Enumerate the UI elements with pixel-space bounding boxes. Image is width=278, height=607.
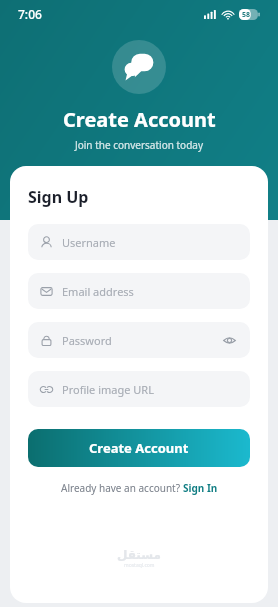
button[interactable]: Email address [28, 273, 250, 309]
button[interactable]: Password [28, 322, 250, 358]
staticText: 58 [242, 10, 251, 20]
staticText: Password [62, 333, 112, 348]
staticText: Profile image URL [62, 382, 154, 397]
button[interactable]: Show password [220, 331, 238, 349]
staticText: Already have an account? [61, 481, 183, 495]
button[interactable]: Username [28, 224, 250, 260]
staticText: Sign In [183, 481, 218, 495]
button[interactable]: Profile image URL [28, 371, 250, 407]
staticText: Create Account [89, 439, 189, 457]
staticText: Email address [62, 284, 134, 299]
staticText: Sign Up [28, 186, 89, 208]
staticText: مستقل [117, 548, 161, 562]
button[interactable]: Create Account [28, 429, 250, 467]
staticText: Username [62, 235, 116, 250]
staticText: Create Account [63, 106, 216, 133]
staticText: 7:06 [18, 6, 42, 22]
staticText: Join the conversation today [75, 138, 203, 152]
button[interactable]: Sign In [183, 481, 218, 495]
staticText: mostaql.com [124, 562, 155, 569]
